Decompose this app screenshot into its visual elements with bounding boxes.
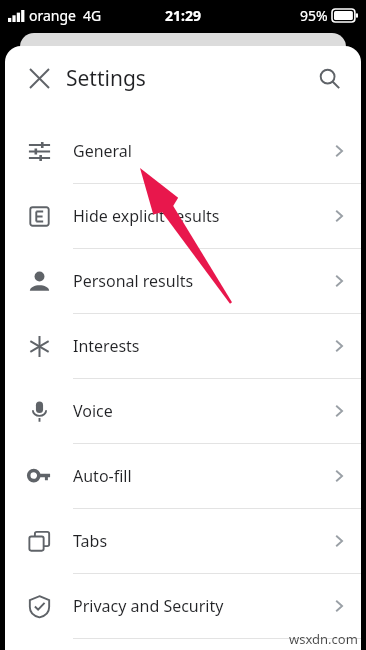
button[interactable]: Interests (5, 314, 361, 378)
button[interactable]: Tabs (5, 509, 361, 573)
staticText: 21:29 (165, 6, 201, 25)
staticText: wsxdn.com (289, 630, 358, 648)
button[interactable]: Auto-fill (5, 444, 361, 508)
button[interactable]: Voice (5, 379, 361, 443)
staticText: Settings (66, 64, 146, 93)
staticText: 95% (300, 6, 328, 25)
staticText: Voice (73, 400, 317, 422)
staticText: Interests (73, 335, 317, 357)
staticText: orange (29, 6, 76, 25)
staticText: Hide explicit results (73, 205, 317, 227)
staticText: Auto-fill (73, 465, 317, 487)
staticText: Tabs (73, 530, 317, 552)
staticText: General (73, 140, 317, 162)
button[interactable]: General (5, 119, 361, 183)
button[interactable]: Personal results (5, 249, 361, 313)
button[interactable]: Privacy and Security (5, 574, 361, 638)
button[interactable]: Close (17, 56, 61, 100)
button[interactable]: Search (307, 56, 351, 100)
button[interactable]: Hide explicit results (5, 184, 361, 248)
staticText: 4G (83, 6, 102, 25)
staticText: Personal results (73, 270, 317, 292)
staticText: Privacy and Security (73, 595, 317, 617)
